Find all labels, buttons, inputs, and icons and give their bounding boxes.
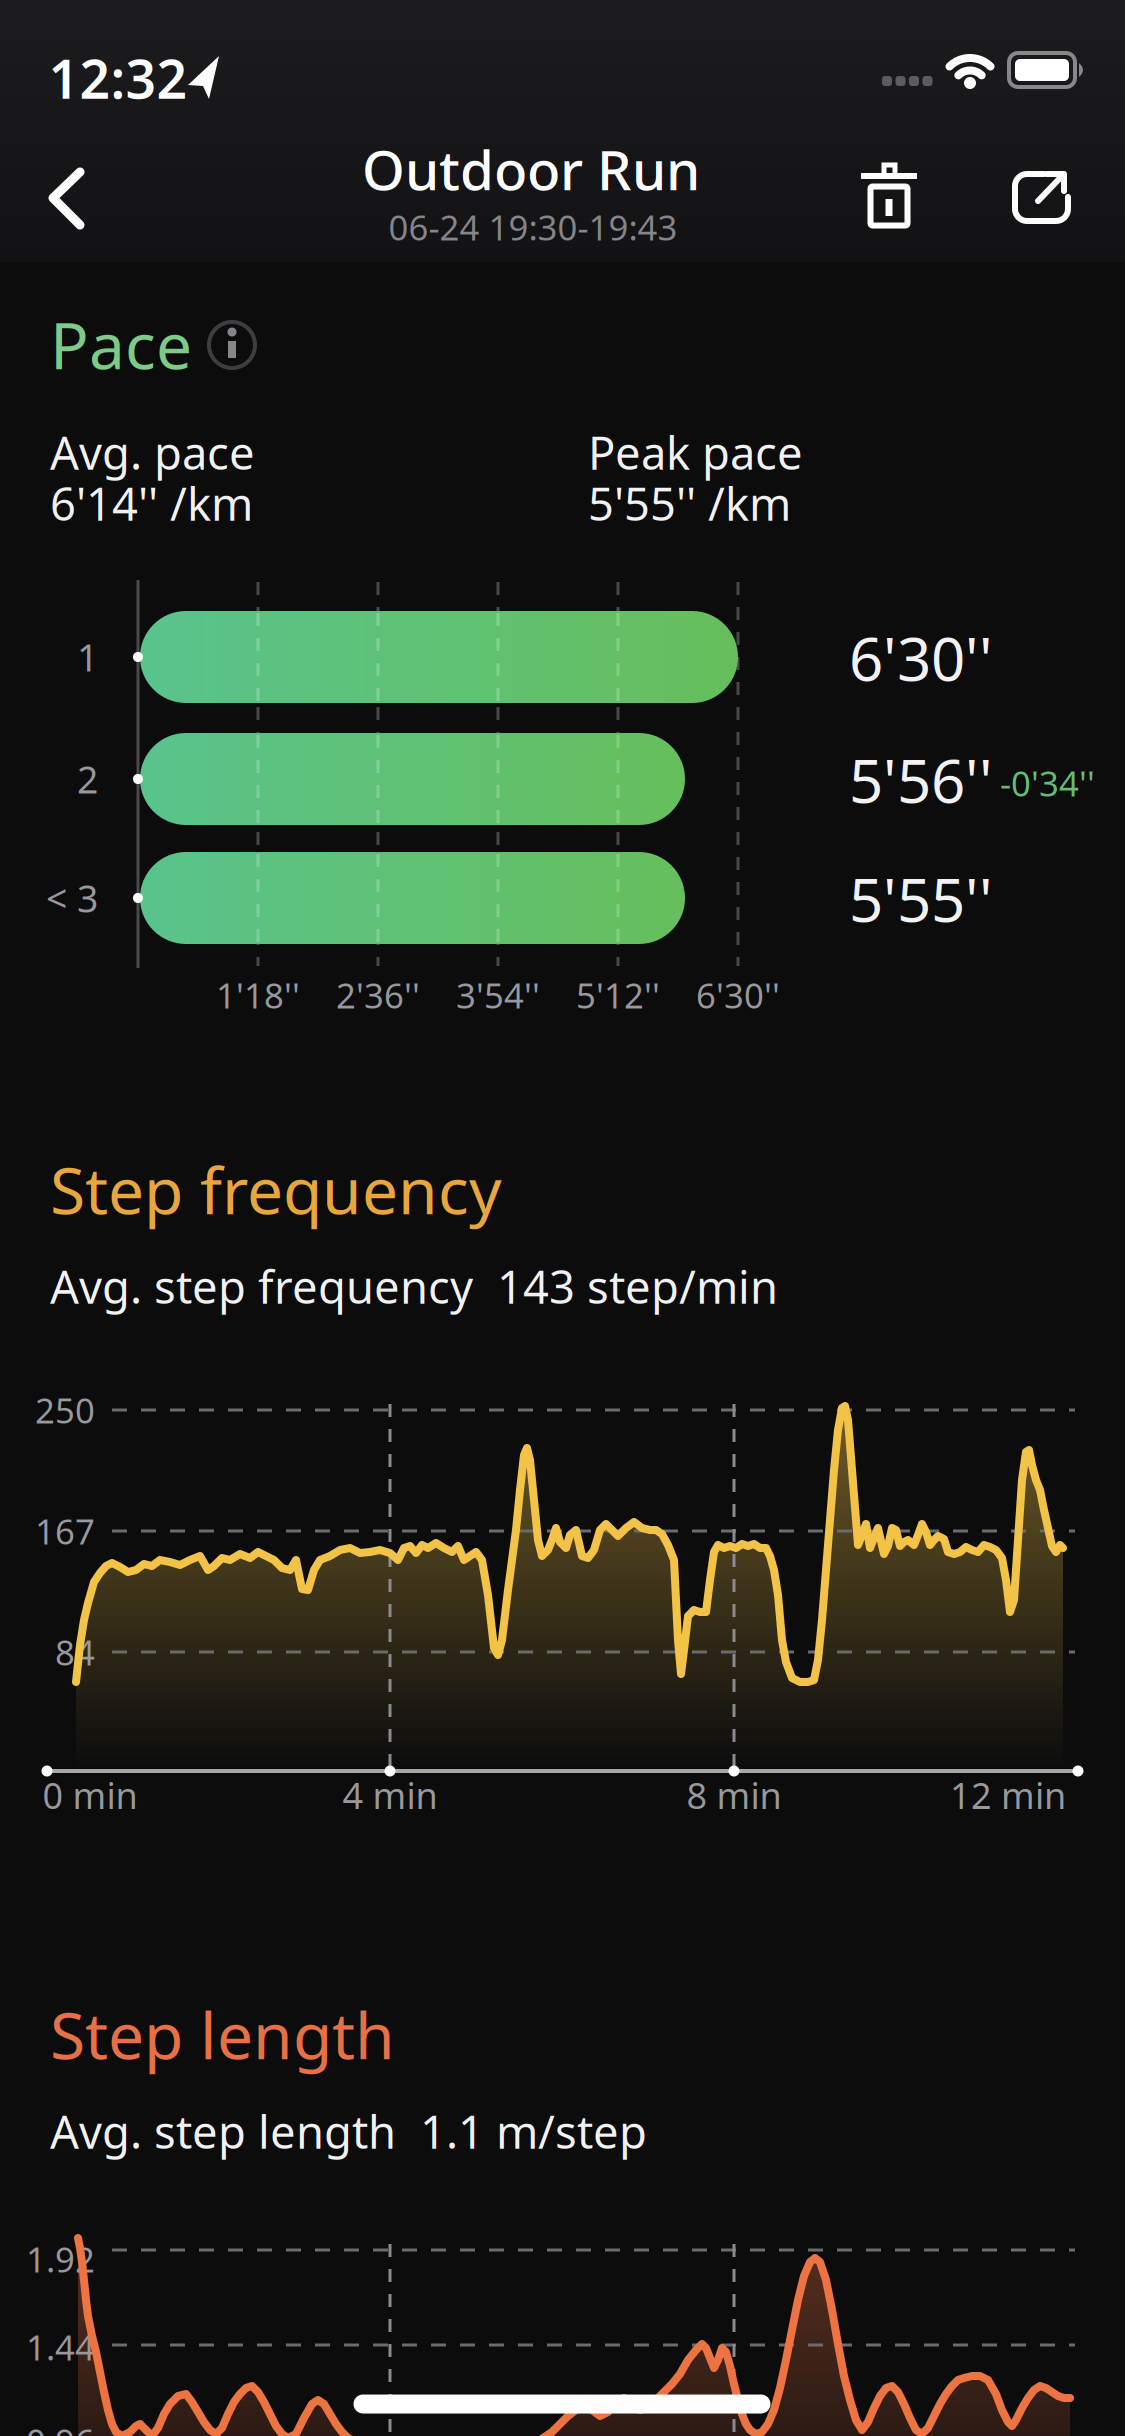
staticText: Avg. step length 1.1 m/step — [50, 2101, 647, 2161]
staticText: 1'18'' — [216, 972, 300, 1018]
staticText: 12:32 — [48, 43, 187, 113]
staticText: Pace — [50, 302, 192, 387]
staticText: 1 — [77, 632, 98, 682]
staticText: Avg. step frequency 143 step/min — [50, 1256, 778, 1316]
staticText: Peak pace — [588, 422, 803, 482]
staticText: 12 min — [950, 1771, 1066, 1819]
staticText: -0'34'' — [1000, 760, 1095, 806]
staticText: 8 min — [686, 1771, 781, 1819]
button[interactable]: Delete — [0, 0, 100, 106]
staticText: 5'55'' /km — [588, 473, 791, 533]
staticText: Outdoor Run — [362, 133, 700, 205]
staticText: 2 — [77, 754, 98, 804]
staticText: 2'36'' — [336, 972, 420, 1018]
staticText: 0.96 — [26, 2418, 95, 2436]
staticText: 4 min — [342, 1771, 437, 1819]
staticText: 6'30'' — [696, 972, 780, 1018]
staticText: Avg. pace — [50, 422, 255, 482]
staticText: 5'56'' — [849, 740, 993, 820]
button[interactable]: Back — [0, 0, 100, 106]
staticText: Step frequency — [50, 1147, 502, 1232]
staticText: 5'55'' — [849, 859, 993, 939]
staticText: 84 — [55, 1629, 95, 1675]
staticText: 250 — [35, 1387, 95, 1433]
staticText: 06-24 19:30-19:43 — [388, 204, 677, 250]
staticText: Step length — [50, 1992, 395, 2077]
staticText: 0 min — [42, 1771, 137, 1819]
staticText: 1.92 — [26, 2236, 95, 2282]
staticText: 6'14'' /km — [50, 473, 253, 533]
staticText: 6'30'' — [849, 618, 993, 698]
button[interactable]: Share — [0, 0, 100, 106]
staticText: 1.44 — [26, 2324, 95, 2370]
staticText: 3'54'' — [456, 972, 540, 1018]
staticText: 5'12'' — [576, 972, 660, 1018]
staticText: < 3 — [46, 873, 98, 923]
staticText: 167 — [35, 1508, 95, 1554]
button[interactable]: Pace info — [205, 318, 259, 372]
